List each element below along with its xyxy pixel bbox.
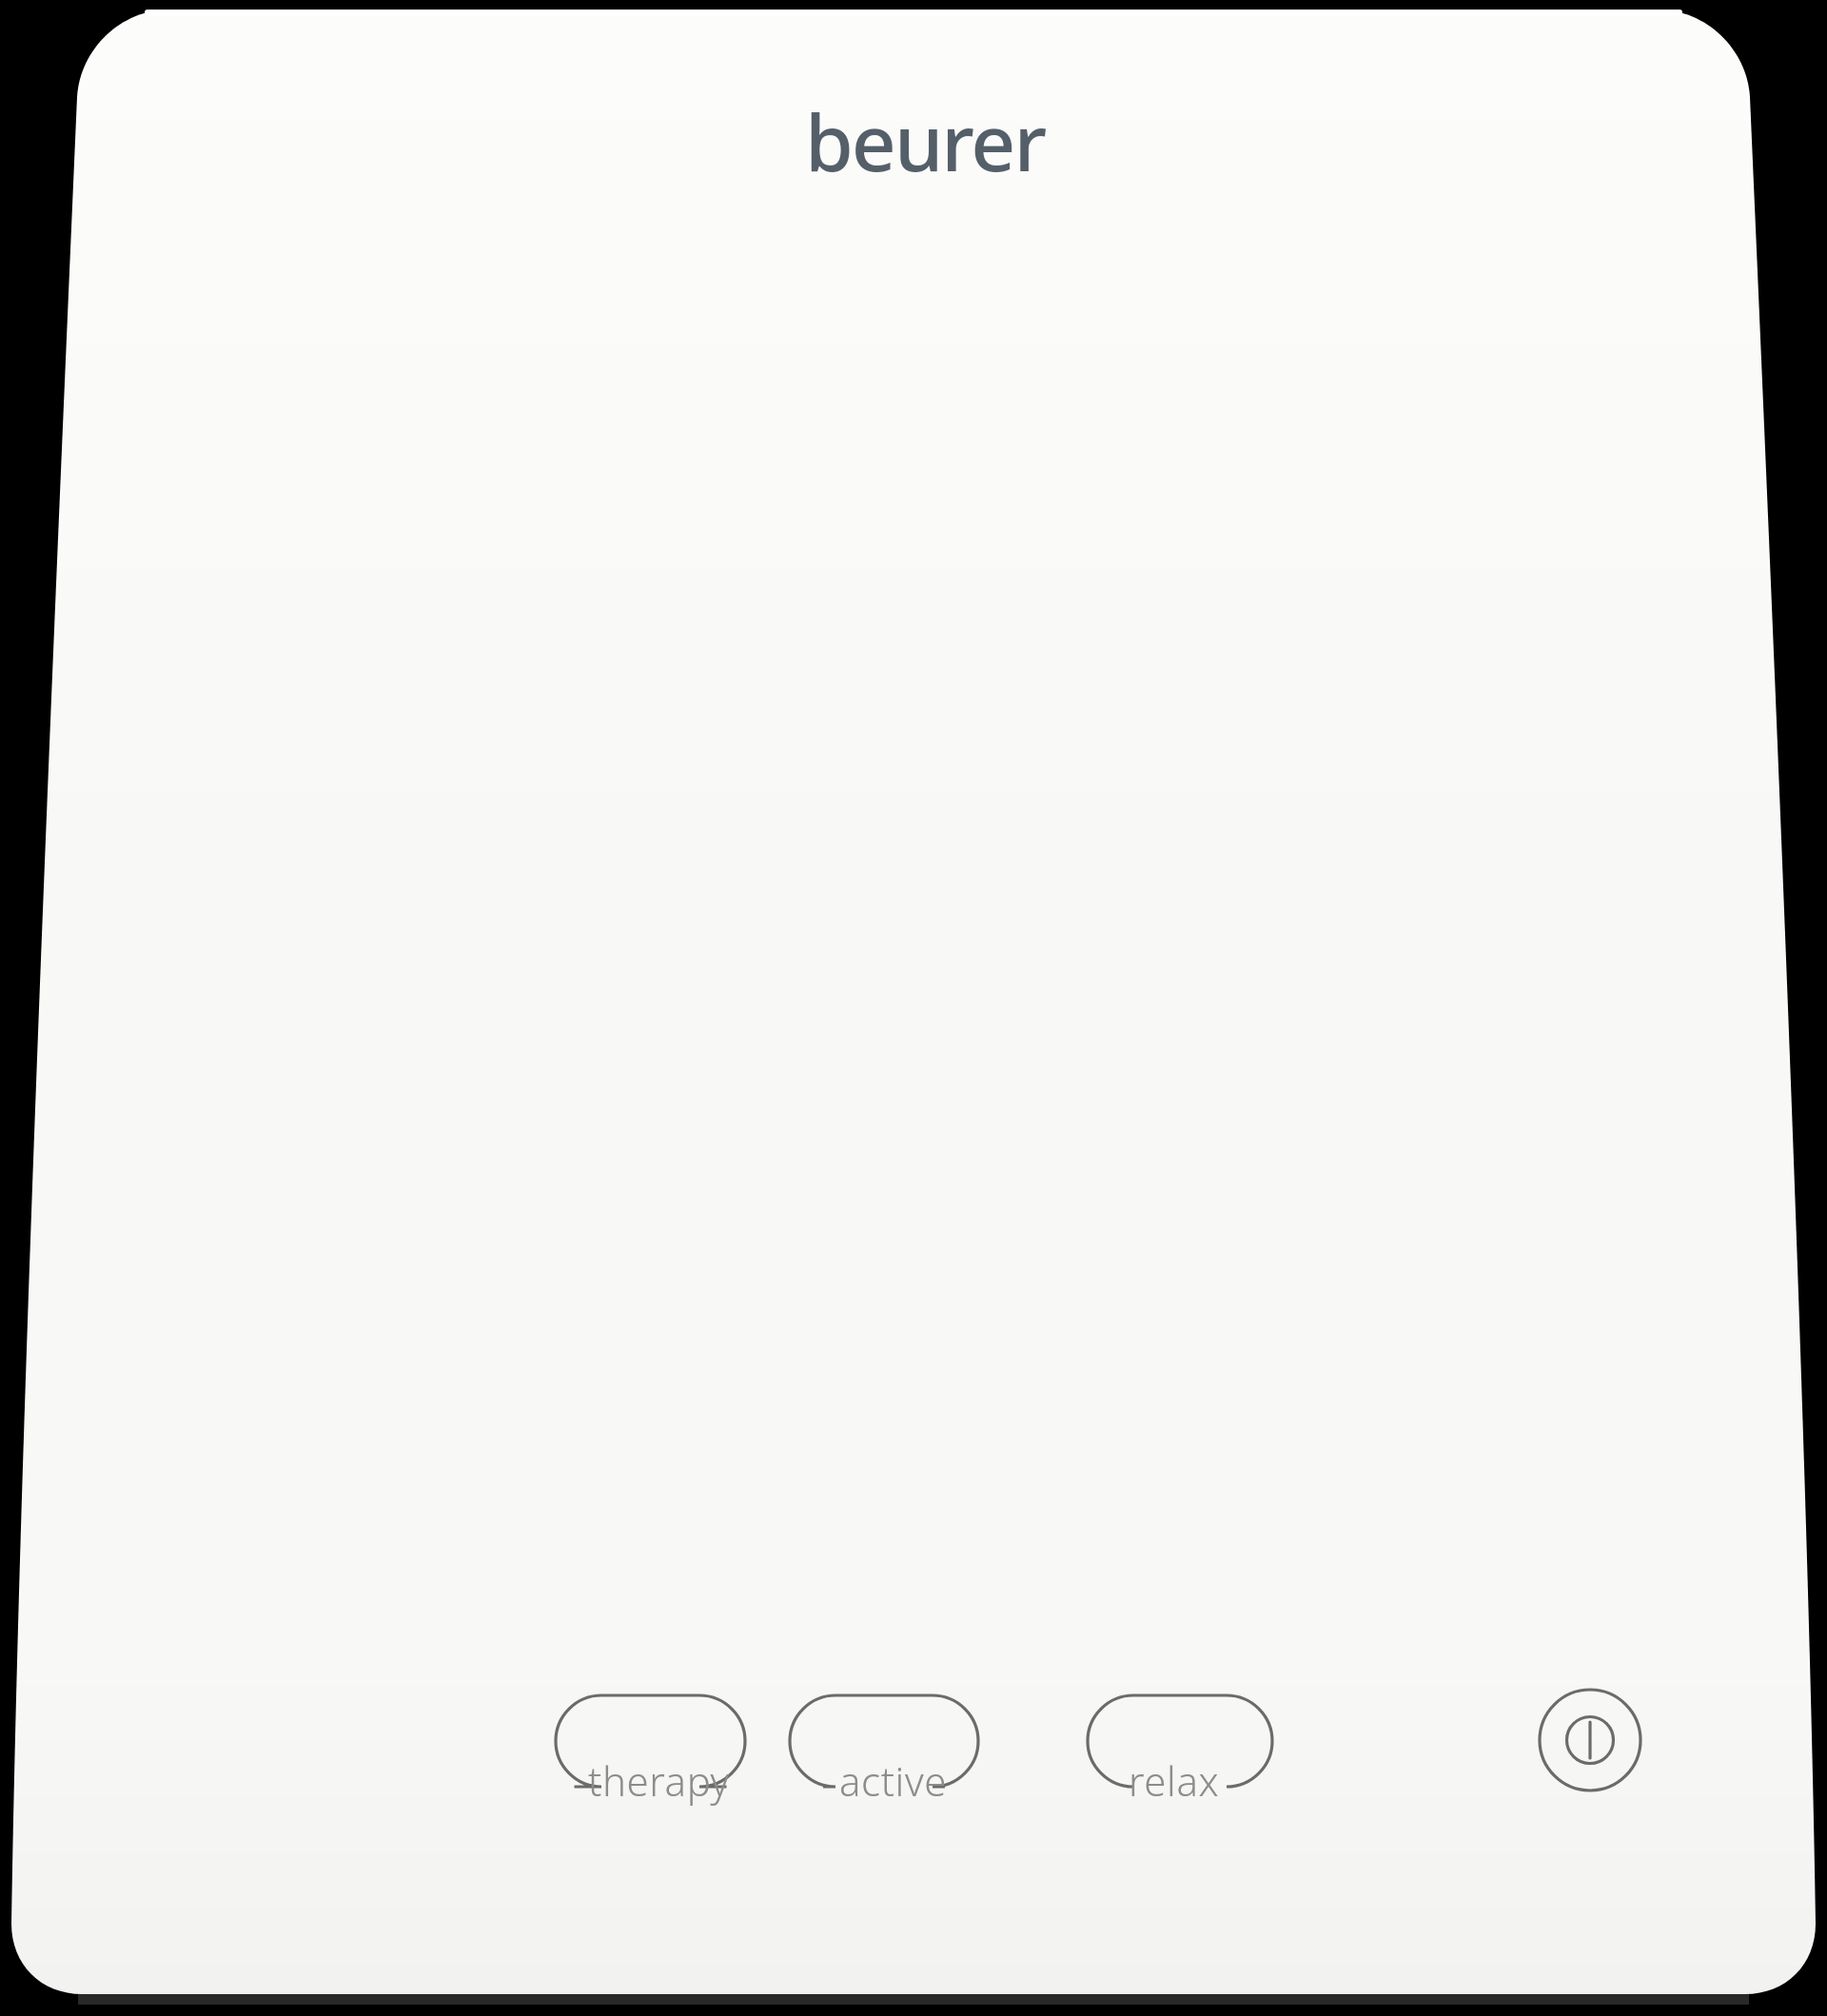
staticText: beurer (805, 88, 1046, 194)
staticText: therapy (588, 1753, 730, 1808)
staticText: active (839, 1753, 948, 1808)
button[interactable]: therapy (556, 1695, 745, 1800)
button[interactable]: relax (1088, 1695, 1272, 1800)
button[interactable]: Power (1540, 1690, 1640, 1791)
staticText: relax (1129, 1753, 1220, 1808)
button[interactable]: active (790, 1695, 978, 1800)
